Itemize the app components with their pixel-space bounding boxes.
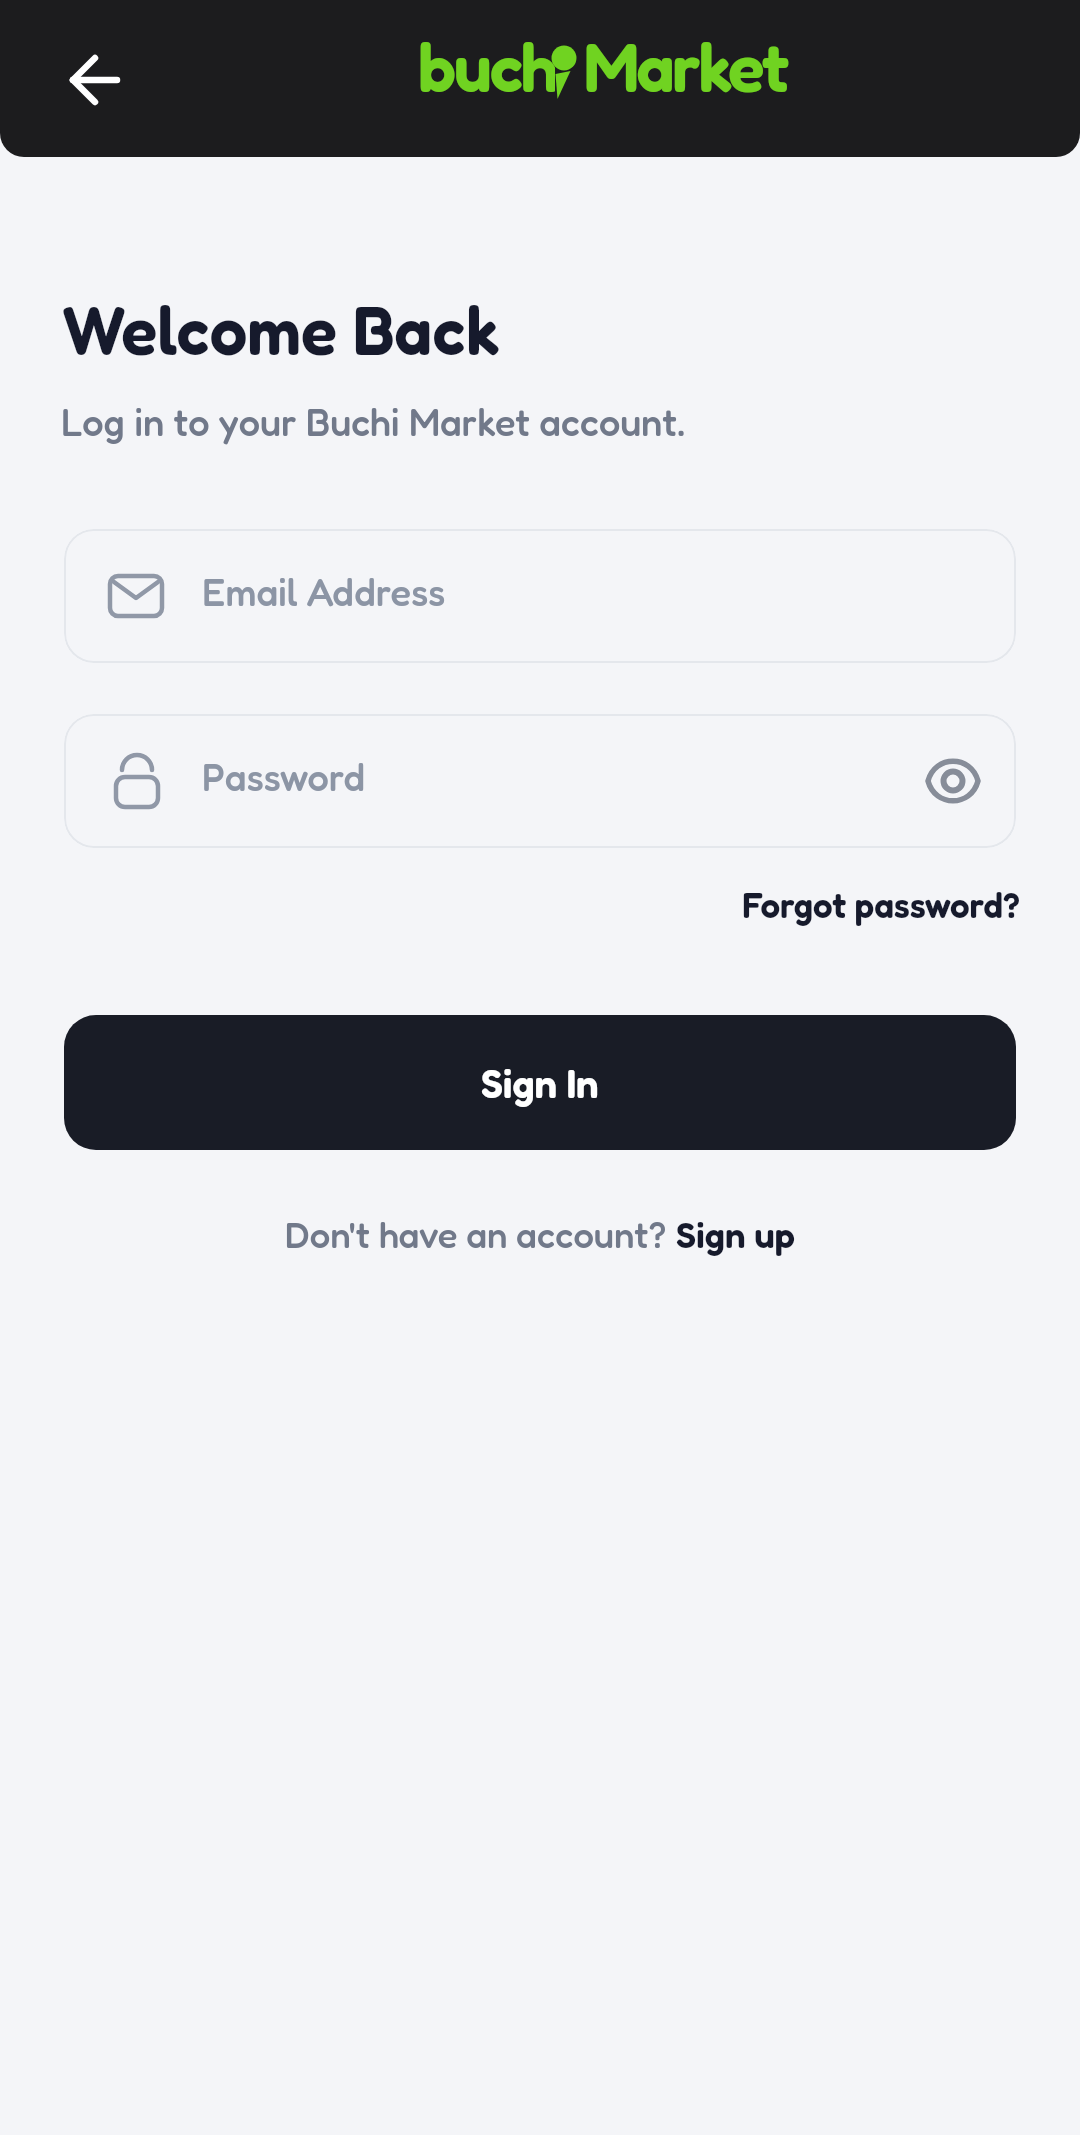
staticText: Password — [202, 754, 366, 800]
button[interactable]: Forgot password? — [742, 884, 1020, 926]
button[interactable]: Password — [64, 714, 1016, 848]
staticText: buchi Market — [418, 25, 787, 107]
button[interactable]: Sign up — [676, 1212, 795, 1256]
button[interactable]: Sign In — [64, 1015, 1016, 1150]
button[interactable]: Email Address — [64, 529, 1016, 663]
staticText: Don't have an account? — [285, 1212, 676, 1256]
button[interactable] — [61, 46, 129, 114]
staticText: Log in to your Buchi Market account. — [61, 399, 686, 445]
staticText: Email Address — [202, 569, 446, 615]
staticText: Welcome Back — [62, 289, 500, 370]
staticText: Sign In — [481, 1059, 599, 1107]
